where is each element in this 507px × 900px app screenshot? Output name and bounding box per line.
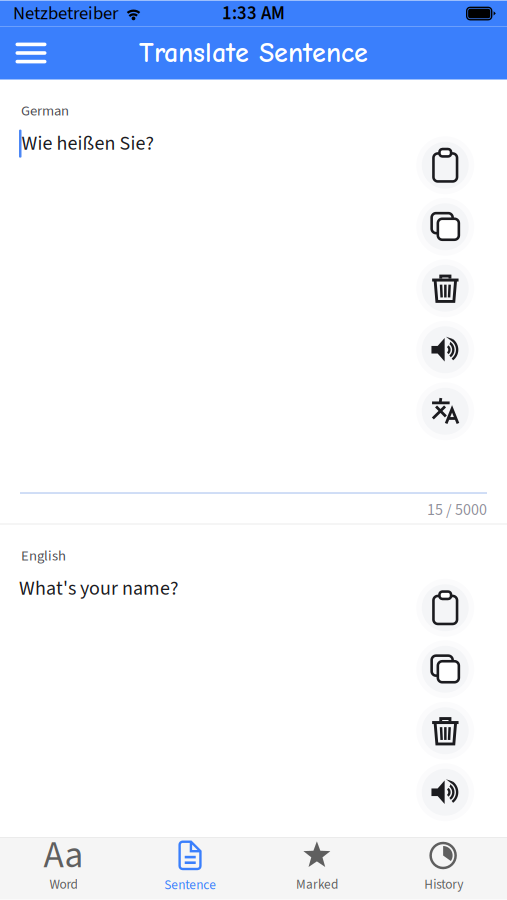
staticText: What's your name? [19, 574, 179, 603]
staticText: 15 / 5000 [427, 499, 487, 521]
button[interactable]: Paste [414, 577, 476, 638]
button[interactable]: Delete [414, 700, 476, 761]
staticText: Sentence [164, 875, 216, 894]
staticText: Word [49, 875, 77, 894]
button[interactable]: Speak [414, 319, 476, 380]
staticText: History [424, 875, 463, 894]
button[interactable]: Sentence [127, 838, 254, 900]
button[interactable]: Copy [414, 196, 476, 257]
button[interactable]: Menu [0, 26, 62, 79]
button[interactable]: Speak [414, 761, 476, 823]
staticText: English [21, 545, 66, 566]
button[interactable]: Delete [414, 257, 476, 319]
staticText: 1:33 AM [222, 0, 285, 27]
staticText: German [21, 100, 69, 121]
staticText: Aa [43, 829, 83, 882]
button[interactable]: Translate [414, 380, 476, 442]
button[interactable]: Aa [0, 838, 127, 900]
staticText: Netzbetreiber [13, 0, 118, 27]
button[interactable]: Paste [414, 134, 476, 196]
button[interactable]: Copy [414, 638, 476, 700]
staticText: Translate Sentence [139, 37, 368, 69]
staticText: Wie heißen Sie? [21, 129, 154, 158]
button[interactable]: Marked [253, 838, 380, 900]
button[interactable]: History [380, 838, 507, 900]
staticText: Marked [296, 875, 338, 894]
